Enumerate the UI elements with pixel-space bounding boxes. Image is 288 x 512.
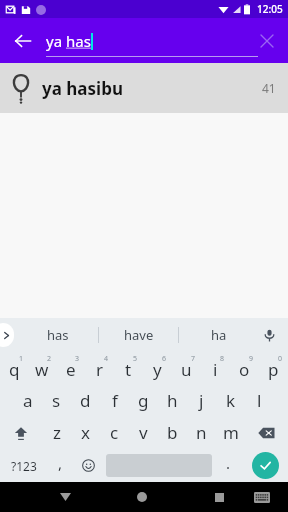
button[interactable]: Search — [252, 452, 279, 479]
staticText: d — [80, 389, 91, 412]
button[interactable]: c — [100, 416, 129, 449]
staticText: , — [58, 453, 63, 473]
button[interactable]: , — [48, 449, 73, 482]
staticText: have — [124, 326, 154, 344]
button[interactable]: ha — [179, 318, 258, 352]
button[interactable]: k — [216, 384, 245, 416]
button[interactable]: n — [187, 416, 216, 449]
button[interactable]: Voice input — [256, 322, 282, 348]
staticText: f — [112, 389, 118, 412]
staticText: ya hasibu — [42, 77, 123, 100]
staticText: n — [196, 421, 207, 444]
button[interactable]: x — [71, 416, 100, 449]
button[interactable]: More suggestions — [0, 323, 14, 347]
staticText: 2 — [47, 354, 52, 364]
button[interactable]: s — [42, 384, 71, 416]
staticText: 1 — [19, 354, 24, 364]
button[interactable]: f — [100, 384, 129, 416]
button[interactable]: w — [28, 352, 56, 384]
button[interactable]: v — [129, 416, 158, 449]
button[interactable]: Back — [6, 24, 40, 58]
staticText: 5 — [133, 354, 138, 364]
staticText: k — [226, 389, 236, 412]
staticText: s — [52, 389, 61, 412]
button[interactable]: z — [42, 416, 71, 449]
button[interactable]: l — [245, 384, 274, 416]
button[interactable]: j — [187, 384, 216, 416]
button[interactable]: e — [56, 352, 85, 384]
staticText: j — [199, 389, 204, 412]
staticText: y — [153, 358, 162, 381]
staticText: q — [9, 358, 20, 381]
staticText: u — [181, 358, 192, 381]
staticText: t — [125, 358, 132, 381]
staticText: 6 — [162, 354, 167, 364]
button[interactable]: b — [158, 416, 187, 449]
staticText: . — [226, 453, 231, 473]
staticText: z — [53, 421, 61, 444]
staticText: m — [223, 421, 239, 444]
staticText: ya has — [46, 31, 91, 51]
button[interactable]: Switch keyboard — [247, 482, 277, 512]
button[interactable]: Recent apps — [204, 482, 234, 512]
staticText: r — [96, 358, 104, 381]
button[interactable]: Back — [50, 482, 80, 512]
button[interactable]: r — [85, 352, 114, 384]
button[interactable]: ?123 — [0, 449, 48, 482]
staticText: l — [257, 389, 262, 412]
staticText: 9 — [249, 354, 254, 364]
staticText: p — [268, 358, 279, 381]
button[interactable]: p — [259, 352, 288, 384]
button[interactable]: has — [18, 318, 98, 352]
button[interactable]: t — [114, 352, 143, 384]
button[interactable]: Backspace — [245, 416, 288, 449]
staticText: g — [138, 389, 149, 412]
staticText: e — [66, 358, 76, 381]
staticText: h — [167, 389, 178, 412]
button[interactable]: . — [214, 449, 242, 482]
staticText: 7 — [191, 354, 196, 364]
button[interactable]: Emoji — [73, 449, 104, 482]
button[interactable]: Clear — [252, 26, 282, 56]
button[interactable]: o — [230, 352, 259, 384]
button[interactable]: Shift — [0, 416, 42, 449]
staticText: o — [239, 358, 250, 381]
staticText: w — [35, 358, 49, 381]
staticText: 12:05 — [257, 2, 283, 16]
button[interactable]: u — [172, 352, 201, 384]
button[interactable]: d — [71, 384, 100, 416]
button[interactable]: m — [216, 416, 245, 449]
button[interactable]: ya hasibu — [0, 63, 288, 113]
button[interactable]: h — [158, 384, 187, 416]
button[interactable]: have — [99, 318, 178, 352]
staticText: 4 — [104, 354, 109, 364]
staticText: 0 — [278, 354, 283, 364]
staticText: 8 — [220, 354, 225, 364]
staticText: c — [110, 421, 119, 444]
staticText: has — [47, 326, 69, 344]
staticText: 3 — [75, 354, 80, 364]
button[interactable]: a — [14, 384, 42, 416]
staticText: i — [213, 358, 218, 381]
button[interactable]: q — [0, 352, 28, 384]
staticText: a — [23, 389, 33, 412]
button[interactable]: y — [143, 352, 172, 384]
staticText: ha — [211, 326, 227, 344]
button[interactable]: i — [201, 352, 230, 384]
button[interactable]: g — [129, 384, 158, 416]
staticText: x — [81, 421, 90, 444]
button[interactable]: Home — [127, 482, 157, 512]
staticText: b — [167, 421, 178, 444]
staticText: 41 — [262, 80, 276, 96]
staticText: ?123 — [11, 458, 37, 474]
staticText: v — [139, 421, 148, 444]
